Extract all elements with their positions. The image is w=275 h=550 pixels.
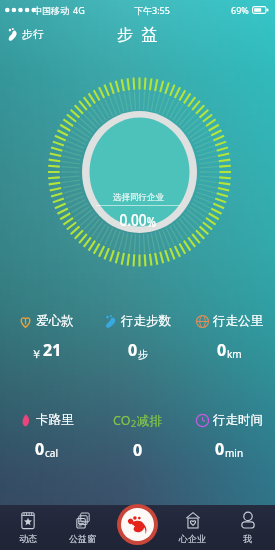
button[interactable]: 行走时间 (184, 412, 275, 460)
button[interactable]: 步行打卡 (117, 504, 158, 545)
staticText: 下午3:55 (134, 4, 170, 16)
staticText: km (227, 347, 242, 361)
button[interactable]: 动态 (0, 505, 55, 550)
staticText: cal (45, 446, 58, 460)
button[interactable]: 选择同行企业 (113, 192, 164, 203)
button[interactable]: 公益窗 (55, 505, 110, 550)
staticText: 0 (217, 339, 227, 361)
staticText: 0 (35, 438, 45, 460)
staticText: 公益窗 (69, 533, 96, 544)
staticText: 0 (215, 438, 225, 460)
button[interactable]: 爱心款 (1, 313, 92, 361)
button[interactable]: 心企业 (165, 505, 220, 550)
staticText: 步 (138, 348, 148, 361)
staticText: 减排 (137, 413, 162, 429)
button[interactable]: CO (92, 412, 183, 461)
staticText: 4G (73, 4, 85, 16)
staticText: 我 (243, 533, 252, 544)
staticText: 行走公里 (213, 313, 263, 329)
staticText: 步行 (22, 27, 44, 41)
button[interactable]: 行走公里 (184, 313, 275, 361)
button[interactable]: 步行 (0, 23, 52, 45)
staticText: 动态 (19, 533, 37, 544)
staticText: 0 (128, 339, 138, 361)
staticText: 爱心款 (36, 313, 74, 329)
staticText: 行走步数 (121, 313, 171, 329)
staticText: ￥ (31, 347, 42, 361)
staticText: 69% (231, 4, 249, 16)
button[interactable]: 卡路里 (1, 412, 92, 460)
staticText: 心企业 (179, 533, 206, 544)
staticText: 2 (131, 417, 137, 429)
staticText: min (225, 446, 244, 460)
staticText: 卡路里 (36, 412, 74, 428)
staticText: 行走时间 (213, 412, 263, 428)
staticText: 0.00 (120, 208, 147, 231)
staticText: 步 益 (117, 23, 158, 45)
staticText: % (147, 213, 156, 231)
button[interactable]: 我 (220, 505, 275, 550)
button[interactable]: 行走步数 (92, 313, 183, 361)
staticText: 0 (133, 439, 143, 461)
staticText: CO (113, 412, 131, 429)
staticText: 21 (43, 339, 62, 361)
staticText: 中国移动 (33, 5, 69, 16)
